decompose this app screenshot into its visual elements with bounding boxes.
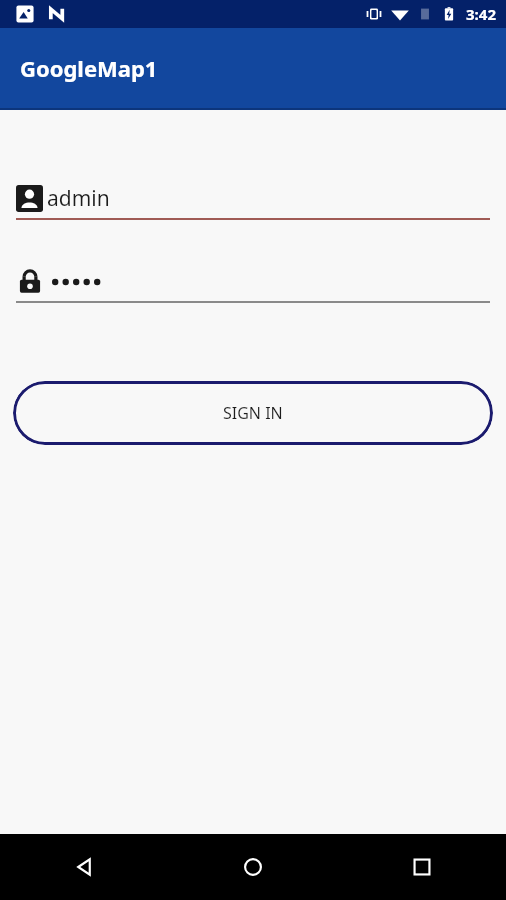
staticText: SIGN IN (223, 402, 283, 424)
button[interactable]: Recent apps (337, 834, 506, 900)
button[interactable]: Back (0, 834, 168, 900)
button[interactable]: Home (168, 834, 337, 900)
staticText: 3:42 (466, 4, 496, 24)
staticText: GoogleMap1 (20, 53, 158, 83)
button[interactable]: SIGN IN (13, 381, 493, 445)
staticText: admin (47, 184, 110, 213)
